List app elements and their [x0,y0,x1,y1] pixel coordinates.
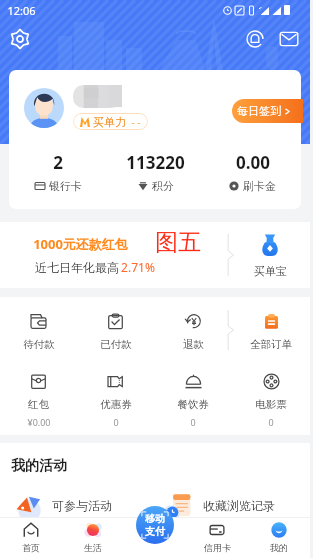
staticText: 我的活动 [11,457,67,475]
button[interactable]: Messages [279,29,299,49]
button[interactable]: 收藏浏览记录 [165,487,310,523]
button[interactable]: 2 [9,151,107,193]
button[interactable]: 可参与活动 [14,487,155,523]
staticText: 0.00 [236,151,270,174]
button[interactable]: 待付款 [0,297,77,366]
button[interactable]: 首页 [0,517,62,558]
staticText: 1000元还款红包 [33,235,128,253]
staticText: 银行卡 [49,179,82,193]
staticText: 信用卡 [204,542,231,553]
button[interactable]: 移动 [136,506,174,544]
button[interactable]: 0.00 [204,151,301,193]
staticText: 首页 [22,542,40,553]
button[interactable]: 全部订单 [232,297,310,366]
staticText: 我的 [270,542,288,553]
staticText: 优惠券 [100,398,132,411]
staticText: ¥0.00 [27,416,51,428]
button[interactable]: 信用卡 [186,517,248,558]
staticText: 113220 [126,151,185,174]
button[interactable]: 每日签到 [232,99,303,123]
staticText: 支付 [145,525,165,538]
staticText: 0 [268,416,274,428]
button[interactable]: 我的 [248,517,310,558]
button[interactable]: 生活 [62,517,124,558]
button[interactable]: 1000元还款红包 [33,235,155,275]
staticText: 买单力 [93,115,126,129]
staticText: 红包 [28,398,49,411]
staticText: 2 [53,151,63,174]
staticText: 积分 [152,179,174,193]
button[interactable]: 买单宝 [230,233,310,278]
button[interactable]: 退款 [154,297,232,366]
staticText: 0 [190,416,196,428]
staticText: 餐饮券 [177,398,209,411]
button[interactable]: 优惠券 [77,366,154,435]
staticText: 每日签到 [237,104,281,118]
staticText: 0 [113,416,119,428]
button[interactable]: 电影票 [232,366,310,435]
staticText: 可参与活动 [52,498,112,513]
staticText: 买单宝 [254,264,287,278]
staticText: 收藏浏览记录 [203,498,275,513]
button[interactable]: 买单力 [80,113,141,130]
staticText: 12:06 [7,3,36,18]
staticText: 退款 [183,338,204,351]
staticText: 图五 [155,228,201,257]
button[interactable]: 红包 [0,366,77,435]
button[interactable]: 113220 [107,151,204,193]
button[interactable]: Profile avatar [24,88,64,128]
staticText: 刷卡金 [243,179,276,193]
staticText: - - [131,115,141,129]
staticText: 2.71% [121,259,155,275]
staticText: 近七日年化最高 [33,259,121,275]
button[interactable]: Customer service [245,29,265,49]
button[interactable]: Settings [9,28,31,50]
staticText: 全部订单 [250,338,292,351]
button[interactable]: 餐饮券 [154,366,232,435]
button[interactable]: 已付款 [77,297,154,366]
staticText: 待付款 [23,338,55,351]
staticText: 电影票 [255,398,287,411]
staticText: 移动 [145,512,165,525]
staticText: 生活 [84,542,102,553]
staticText: 已付款 [100,338,132,351]
